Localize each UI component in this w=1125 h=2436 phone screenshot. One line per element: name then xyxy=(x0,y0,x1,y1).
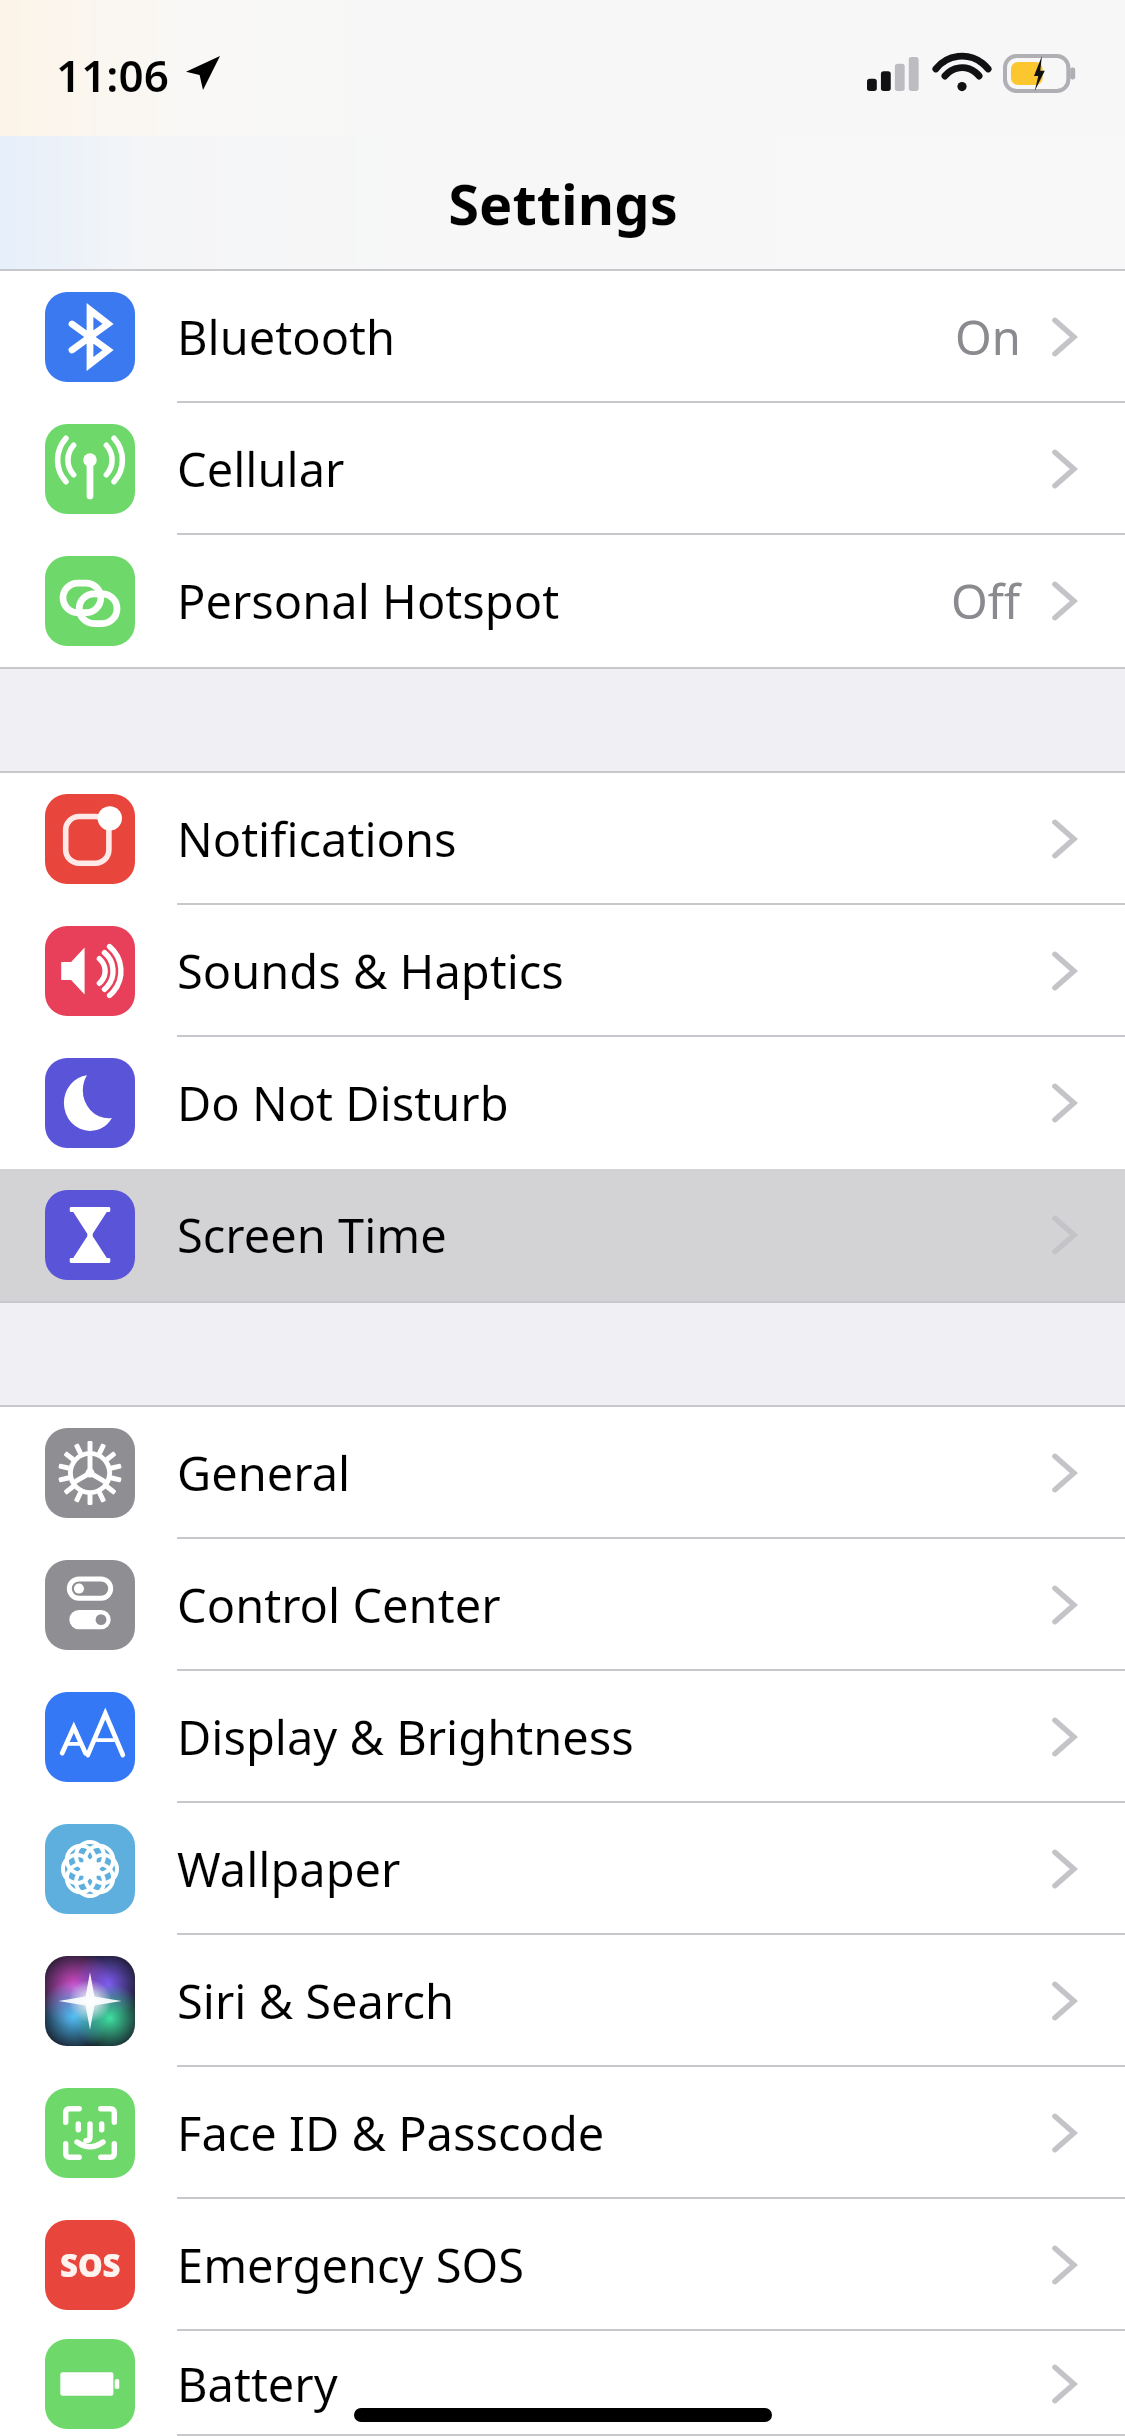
button[interactable]: SOS xyxy=(0,2199,1125,2331)
button[interactable]: Cellular xyxy=(0,403,1125,535)
staticText: Bluetooth xyxy=(177,305,396,369)
staticText: Cellular xyxy=(177,437,345,501)
staticText: Sounds & Haptics xyxy=(177,939,564,1003)
staticText: Siri & Search xyxy=(177,1969,455,2033)
staticText: Notifications xyxy=(177,807,457,871)
button[interactable]: Personal Hotspot xyxy=(0,535,1125,667)
staticText: Display & Brightness xyxy=(177,1705,634,1769)
button[interactable]: Battery xyxy=(0,2331,1125,2436)
staticText: Settings xyxy=(448,165,678,241)
staticText: Off xyxy=(951,569,1021,633)
other: Location active xyxy=(186,56,220,90)
staticText: General xyxy=(177,1441,351,1505)
button[interactable]: Sounds & Haptics xyxy=(0,905,1125,1037)
staticText: Wallpaper xyxy=(177,1837,401,1901)
staticText: Do Not Disturb xyxy=(177,1071,509,1135)
button[interactable]: Wallpaper xyxy=(0,1803,1125,1935)
staticText: Control Center xyxy=(177,1573,501,1637)
staticText: On xyxy=(955,305,1021,369)
button[interactable]: Do Not Disturb xyxy=(0,1037,1125,1169)
button[interactable]: Notifications xyxy=(0,773,1125,905)
staticText: Emergency SOS xyxy=(177,2233,525,2297)
staticText: Personal Hotspot xyxy=(177,569,560,633)
button[interactable]: Control Center xyxy=(0,1539,1125,1671)
button[interactable]: Display & Brightness xyxy=(0,1671,1125,1803)
staticText: SOS xyxy=(60,2244,121,2286)
button[interactable]: Siri & Search xyxy=(0,1935,1125,2067)
button[interactable]: Screen Time xyxy=(0,1169,1125,1301)
staticText: Battery xyxy=(177,2352,338,2416)
button[interactable]: General xyxy=(0,1407,1125,1539)
button[interactable]: Face ID & Passcode xyxy=(0,2067,1125,2199)
staticText: 11:06 xyxy=(56,45,169,105)
staticText: Screen Time xyxy=(177,1203,447,1267)
staticText: Face ID & Passcode xyxy=(177,2101,605,2165)
button[interactable]: Bluetooth xyxy=(0,271,1125,403)
